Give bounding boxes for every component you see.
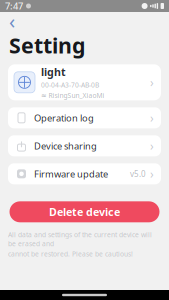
button[interactable]: Device sharing xyxy=(8,135,161,156)
staticText: Firmware update xyxy=(34,168,108,180)
button[interactable]: light xyxy=(8,64,161,100)
staticText: Setting xyxy=(9,31,85,59)
staticText: 7:47 xyxy=(5,0,23,12)
staticText: › xyxy=(150,74,154,90)
button[interactable]: Operation log xyxy=(8,107,161,128)
button[interactable]: Back xyxy=(2,12,22,30)
staticText: ≈ xyxy=(41,92,47,99)
staticText: v5.0 xyxy=(130,168,146,179)
staticText: 00-04-A3-70-AB-0B xyxy=(41,81,99,89)
button[interactable]: Delete device xyxy=(9,201,159,222)
staticText: Device sharing xyxy=(34,140,97,152)
staticText: light xyxy=(41,65,66,79)
staticText: › xyxy=(150,110,154,126)
button[interactable]: Firmware update xyxy=(8,163,161,184)
staticText: All data and settings of the current dev… xyxy=(8,230,152,248)
staticText: RisingSun_XiaoMi xyxy=(48,91,104,100)
staticText: Operation log xyxy=(34,112,94,124)
staticText: cannot be restored. Please be cautious! xyxy=(8,249,133,258)
staticText: Delete device xyxy=(49,205,120,219)
staticText: ‹ xyxy=(9,8,15,34)
staticText: › xyxy=(150,166,154,182)
staticText: › xyxy=(150,138,154,154)
